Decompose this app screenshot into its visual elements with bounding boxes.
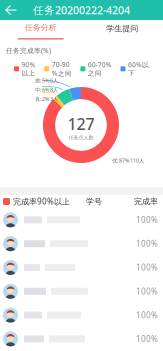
staticText: 100% bbox=[136, 334, 158, 344]
staticText: 100% bbox=[136, 310, 158, 320]
staticText: 100% bbox=[136, 262, 158, 273]
staticText: 任务20200222-4204 bbox=[33, 3, 130, 17]
staticText: 良: 2% 3人 bbox=[35, 95, 58, 102]
staticText: 127 bbox=[67, 113, 94, 134]
button[interactable]: 100% bbox=[0, 208, 163, 232]
staticText: 差: 5% 6人 bbox=[35, 77, 58, 84]
button[interactable]: 学生提问 bbox=[81, 20, 163, 41]
button[interactable]: 100% bbox=[0, 279, 163, 303]
staticText: 优: 87% 110人 bbox=[112, 157, 144, 164]
staticText: 任务分析 bbox=[25, 23, 57, 32]
button[interactable]: Back bbox=[0, 0, 22, 20]
staticText: 60-70%之间 bbox=[88, 60, 112, 77]
button[interactable]: 100% bbox=[0, 327, 163, 351]
button[interactable]: 任务分析 bbox=[0, 20, 81, 41]
staticText: 学生提问 bbox=[106, 24, 138, 33]
button[interactable]: 100% bbox=[0, 232, 163, 256]
staticText: 学号 bbox=[86, 197, 102, 206]
staticText: 100% bbox=[136, 215, 158, 225]
staticText: 90%以上 bbox=[21, 60, 35, 77]
staticText: 任务总人数 bbox=[68, 134, 93, 141]
staticText: 100% bbox=[136, 286, 158, 297]
staticText: 70-90%之间 bbox=[52, 60, 72, 78]
staticText: 100% bbox=[136, 238, 158, 249]
staticText: 中: 6% 8人 bbox=[35, 86, 58, 93]
staticText: 任务完成率(%) bbox=[6, 46, 51, 55]
button[interactable]: 100% bbox=[0, 303, 163, 327]
staticText: 60%以下 bbox=[128, 60, 149, 77]
button[interactable]: 100% bbox=[0, 256, 163, 279]
staticText: 完成率90%以上 bbox=[13, 196, 70, 207]
staticText: 完成率 bbox=[134, 197, 158, 206]
